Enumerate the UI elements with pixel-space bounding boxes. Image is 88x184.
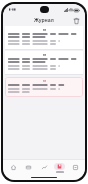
button[interactable]: Stats: [37, 160, 52, 175]
button[interactable]: Cards: [21, 160, 36, 175]
staticText: Журнал: [34, 17, 54, 24]
button[interactable]: Journal: [52, 160, 67, 175]
button[interactable]: Home: [6, 160, 21, 175]
button[interactable]: [5, 77, 83, 97]
button[interactable]: More: [68, 160, 83, 175]
button[interactable]: [5, 26, 83, 49]
button[interactable]: [5, 51, 83, 74]
button[interactable]: Delete all: [72, 16, 81, 25]
